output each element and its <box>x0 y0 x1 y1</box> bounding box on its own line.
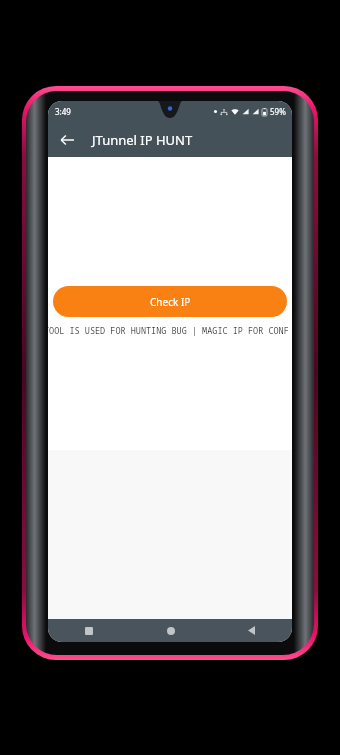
staticText: TOOL IS USED FOR HUNTING BUG | MAGIC IP … <box>48 325 288 337</box>
staticText: Check IP <box>150 295 191 309</box>
staticText: JTunnel IP HUNT <box>92 131 193 149</box>
staticText: 59% <box>270 106 286 117</box>
staticText: 3:49 <box>55 106 71 117</box>
button[interactable]: Back <box>211 619 292 642</box>
button[interactable]: Recent apps <box>48 619 130 642</box>
button[interactable]: Check IP <box>53 286 287 317</box>
button[interactable]: Back <box>52 125 82 155</box>
button[interactable]: Home <box>130 619 211 642</box>
